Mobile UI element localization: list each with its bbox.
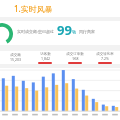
button[interactable]: 完成率: [0, 21, 120, 45]
staticText: 实时成交额:您已超过: [17, 29, 55, 34]
button[interactable]: 成交额: [0, 51, 30, 64]
button[interactable]: 成交订单数: [60, 51, 90, 64]
button[interactable]: 实时成交趋势柱状图: [0, 68, 120, 120]
staticText: 1,842: [41, 56, 50, 61]
button[interactable]: 1.实时风暴: [0, 0, 120, 17]
other: 完成率: [0, 23, 13, 45]
staticText: 7.2%: [101, 56, 109, 61]
staticText: 成交转化率: [96, 52, 114, 56]
staticText: 99: [57, 21, 72, 39]
staticText: 15,203: [10, 57, 21, 62]
staticText: 968: [72, 56, 79, 61]
staticText: %: [72, 29, 77, 36]
staticText: 成交额: [10, 53, 21, 57]
staticText: 成交订单数: [66, 52, 84, 56]
staticText: 1.实时风暴: [14, 3, 53, 14]
button[interactable]: 访客数: [30, 51, 60, 64]
staticText: 同行商家: [79, 29, 95, 34]
staticText: 访客数: [40, 52, 51, 56]
button[interactable]: 成交转化率: [90, 51, 120, 64]
